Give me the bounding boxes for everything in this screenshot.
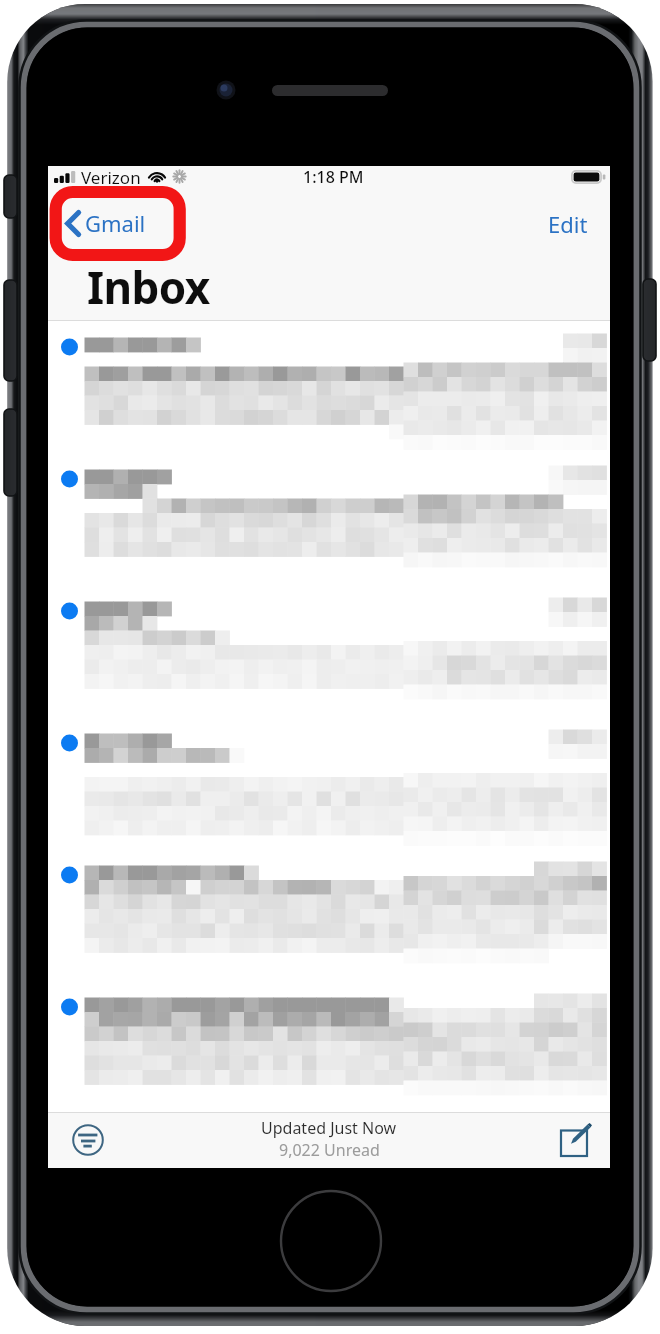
button[interactable]: Gmail <box>62 203 150 243</box>
staticText: Gmail <box>85 208 146 238</box>
button[interactable] <box>48 849 610 981</box>
staticText: 1:18 PM <box>303 166 364 187</box>
staticText: Inbox <box>87 257 210 317</box>
button[interactable] <box>48 321 610 453</box>
button[interactable]: Compose <box>556 1120 596 1160</box>
staticText: Edit <box>548 209 588 239</box>
button[interactable] <box>48 585 610 717</box>
button[interactable] <box>48 981 610 1112</box>
staticText: Verizon <box>81 166 141 187</box>
button[interactable] <box>48 717 610 849</box>
button[interactable]: Filter <box>67 1119 109 1161</box>
staticText: Updated Just Now <box>261 1117 397 1139</box>
button[interactable] <box>48 453 610 585</box>
button[interactable]: Edit <box>542 205 594 243</box>
staticText: 9,022 Unread <box>279 1139 380 1161</box>
